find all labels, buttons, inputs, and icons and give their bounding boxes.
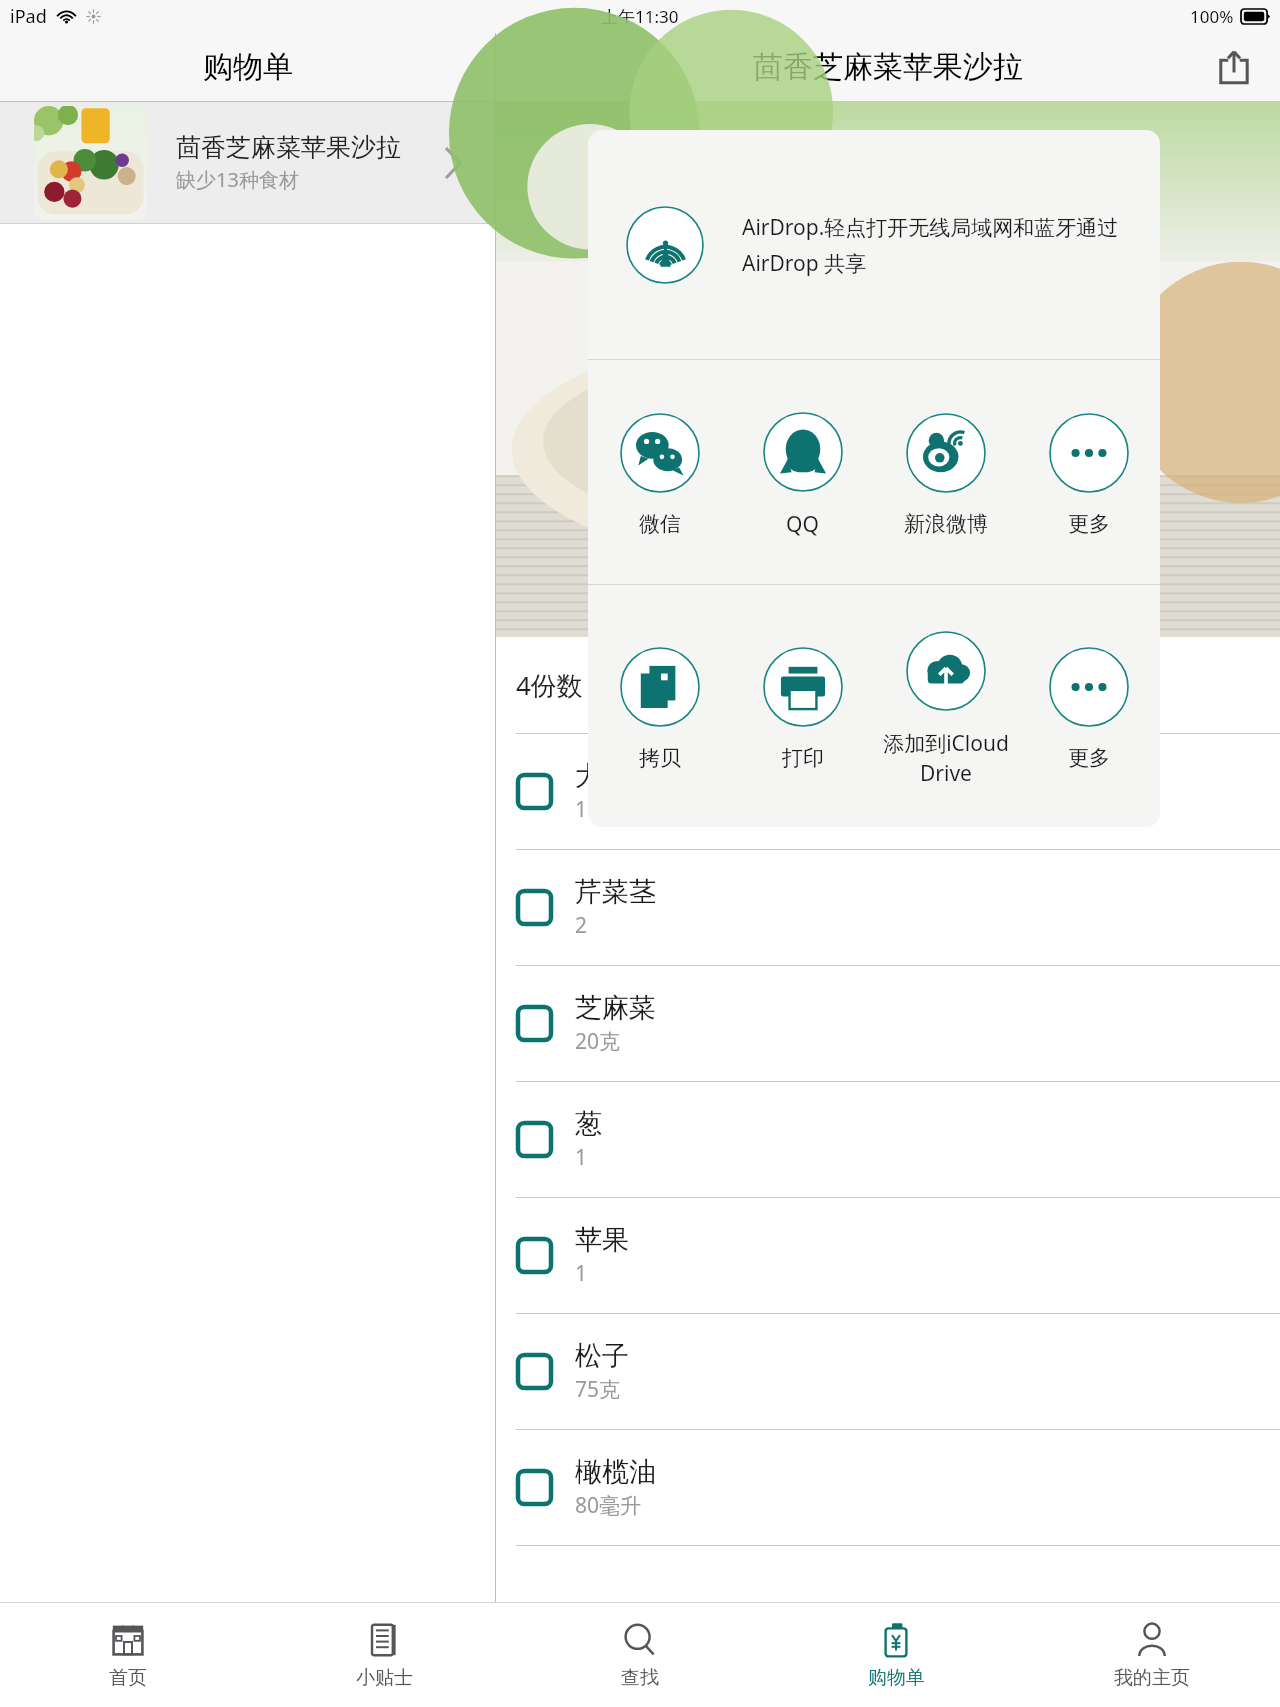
staticText: 小贴士 (356, 1666, 413, 1690)
staticText: iPad (10, 4, 47, 29)
staticText: QQ (786, 510, 819, 539)
button[interactable]: 芹菜茎 (496, 850, 1280, 965)
button[interactable]: 微信 (588, 360, 731, 584)
staticText: 购物单 (203, 48, 293, 86)
staticText: 2 (575, 911, 588, 940)
staticText: 上午11:30 (601, 5, 679, 28)
button[interactable]: 分享 (1210, 43, 1258, 91)
staticText: 添加到iCloud Drive (883, 729, 1009, 787)
button[interactable]: 4份数 (496, 637, 1280, 733)
button[interactable]: 松子 (496, 1314, 1280, 1429)
staticText: 松子 (575, 1339, 629, 1373)
staticText: 75克 (575, 1375, 621, 1404)
button[interactable]: 更多 (1017, 360, 1160, 584)
button[interactable]: 苹果 (496, 1198, 1280, 1313)
button[interactable]: 大蒜 (496, 734, 1280, 849)
staticText: 缺少13种食材 (176, 166, 299, 193)
staticText: 芹菜茎 (575, 875, 656, 909)
staticText: 更多 (1068, 745, 1110, 771)
staticText: 大蒜 (575, 759, 629, 793)
staticText: 我的主页 (1114, 1666, 1190, 1690)
staticText: 芝麻菜 (575, 991, 656, 1025)
staticText: 葱 (575, 1107, 602, 1141)
button[interactable]: 打印 (731, 585, 874, 827)
button[interactable]: QQ (731, 360, 874, 584)
staticText: 微信 (639, 511, 681, 537)
staticText: 100% (1190, 5, 1234, 28)
button[interactable]: 更多 (1017, 585, 1160, 827)
button[interactable]: 芝麻菜 (496, 966, 1280, 1081)
staticText: 80毫升 (575, 1491, 642, 1520)
staticText: 茴香芝麻菜苹果沙拉 (753, 48, 1023, 86)
staticText: 苹果 (575, 1223, 629, 1257)
button[interactable]: 小贴士 (256, 1603, 512, 1707)
button[interactable]: 首页 (0, 1603, 256, 1707)
staticText: 拷贝 (639, 745, 681, 771)
staticText: 1 (575, 1259, 588, 1288)
button[interactable]: 购物单 (768, 1603, 1024, 1707)
staticText: 打印 (782, 745, 824, 771)
button[interactable]: 葱 (496, 1082, 1280, 1197)
button[interactable]: 添加到iCloud Drive (874, 585, 1017, 827)
staticText: 茴香芝麻菜苹果沙拉 (176, 132, 401, 163)
button[interactable]: 我的主页 (1024, 1603, 1280, 1707)
staticText: 4份数 (516, 667, 583, 703)
staticText: 橄榄油 (575, 1455, 656, 1489)
staticText: 1 (575, 1143, 588, 1172)
staticText: 更多 (1068, 511, 1110, 537)
staticText: AirDrop.轻点打开无线局域网和蓝牙通过 AirDrop 共享 (742, 213, 1120, 277)
button[interactable]: 茴香芝麻菜苹果沙拉 (0, 102, 495, 223)
button[interactable]: 橄榄油 (496, 1430, 1280, 1545)
staticText: 20克 (575, 1027, 621, 1056)
staticText: 购物单 (868, 1666, 925, 1690)
button[interactable]: 查找 (512, 1603, 768, 1707)
button[interactable]: AirDrop.轻点打开无线局域网和蓝牙通过 AirDrop 共享 (588, 130, 1160, 359)
staticText: 首页 (109, 1666, 147, 1690)
staticText: 新浪微博 (904, 511, 988, 537)
staticText: 查找 (621, 1666, 659, 1690)
staticText: 1 (575, 795, 588, 824)
button[interactable]: 新浪微博 (874, 360, 1017, 584)
button[interactable]: 拷贝 (588, 585, 731, 827)
